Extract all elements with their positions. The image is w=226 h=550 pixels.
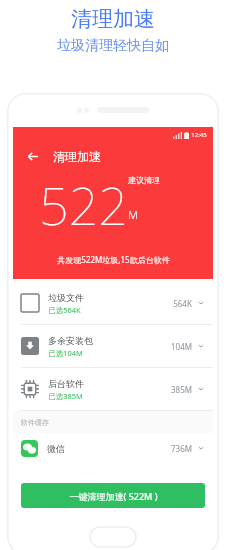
button[interactable]: 微信 (13, 433, 213, 463)
staticText: 多余安装包 (48, 335, 93, 346)
staticText: 已选104M (48, 348, 83, 358)
staticText: 垃圾清理轻快自如 (57, 37, 169, 55)
button[interactable]: 垃圾文件 (13, 282, 213, 324)
staticText: 后台软件 (48, 378, 84, 389)
staticText: 一键清理加速( 522M ) (69, 490, 158, 502)
button[interactable]: Back (21, 145, 43, 167)
staticText: 564K (173, 298, 192, 309)
staticText: 共发现522M垃圾,15款后台软件 (57, 254, 170, 265)
staticText: 软件缓存 (21, 418, 49, 427)
staticText: 垃圾文件 (48, 292, 84, 303)
staticText: 736M (171, 443, 192, 454)
staticText: 522 (39, 169, 128, 240)
staticText: 104M (171, 341, 192, 352)
button[interactable]: 后台软件 (13, 368, 213, 410)
staticText: 385M (171, 384, 192, 395)
staticText: 清理加速 (53, 149, 101, 164)
staticText: 清理加速 (71, 6, 155, 32)
staticText: 已选564K (48, 305, 81, 315)
staticText: 12:45 (191, 131, 207, 139)
button[interactable]: 多余安装包 (13, 325, 213, 367)
staticText: 已选385M (48, 391, 83, 401)
button[interactable]: 一键清理加速( 522M ) (21, 483, 205, 508)
staticText: 建议清理 (128, 175, 160, 185)
staticText: M (128, 207, 138, 222)
staticText: 微信 (47, 443, 65, 454)
